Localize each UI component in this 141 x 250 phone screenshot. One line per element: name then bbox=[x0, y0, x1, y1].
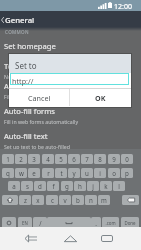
staticText: .com bbox=[105, 220, 116, 226]
button[interactable]: r bbox=[42, 168, 54, 178]
button[interactable]: / bbox=[33, 217, 47, 229]
button[interactable]: 0 bbox=[121, 154, 133, 164]
staticText: Cancel bbox=[28, 93, 51, 103]
staticText: b bbox=[76, 196, 80, 204]
button[interactable]: 1 bbox=[2, 154, 14, 164]
staticText: Auto-fill text bbox=[4, 131, 48, 141]
button[interactable]: j bbox=[87, 181, 99, 191]
button[interactable]: b bbox=[72, 195, 84, 205]
staticText: Normal bbox=[4, 73, 23, 80]
staticText: 4 bbox=[46, 155, 50, 163]
staticText: p bbox=[125, 169, 129, 177]
button[interactable]: Auto-fill text bbox=[0, 131, 141, 150]
button[interactable]: 8 bbox=[94, 154, 106, 164]
button[interactable]: u bbox=[81, 168, 93, 178]
button[interactable]: q bbox=[2, 168, 14, 178]
staticText: General bbox=[5, 15, 35, 26]
staticText: s bbox=[26, 182, 29, 190]
staticText: m bbox=[101, 196, 107, 204]
button[interactable]: p bbox=[121, 168, 133, 178]
staticText: h bbox=[78, 182, 82, 190]
button[interactable]: Cancel bbox=[9, 89, 69, 106]
button[interactable]: 3 bbox=[28, 154, 40, 164]
button[interactable]: 4 bbox=[42, 154, 54, 164]
staticText: 6 bbox=[72, 155, 76, 163]
button[interactable]: w bbox=[15, 168, 27, 178]
staticText: . bbox=[95, 219, 97, 227]
staticText: 7 bbox=[85, 155, 89, 163]
staticText: Set homepage bbox=[4, 41, 56, 51]
staticText: http:// bbox=[12, 76, 34, 86]
button[interactable]: Auto-fill forms bbox=[0, 106, 141, 125]
button[interactable]: . bbox=[91, 217, 101, 229]
button[interactable]: 2 bbox=[15, 154, 27, 164]
staticText: OK bbox=[95, 93, 106, 103]
staticText: Auto-fill forms bbox=[4, 106, 55, 116]
staticText: u bbox=[85, 169, 89, 177]
button[interactable]: OK bbox=[70, 89, 131, 106]
button[interactable]: 9 bbox=[108, 154, 120, 164]
button[interactable] bbox=[122, 195, 139, 205]
button[interactable]: v bbox=[59, 195, 71, 205]
staticText: Fill in web forms automatically bbox=[4, 93, 79, 100]
button[interactable]: 7 bbox=[81, 154, 93, 164]
button[interactable]: k bbox=[100, 181, 112, 191]
staticText: Set to bbox=[15, 60, 37, 71]
staticText: EN bbox=[22, 220, 28, 226]
staticText: e bbox=[32, 169, 36, 177]
button[interactable]: General bbox=[0, 11, 141, 28]
staticText: 12:00 bbox=[114, 2, 132, 12]
staticText: Text size bbox=[4, 61, 35, 71]
button[interactable]: a bbox=[8, 181, 20, 191]
button[interactable]: EN bbox=[18, 217, 32, 229]
staticText: z bbox=[24, 196, 27, 204]
staticText: 8 bbox=[98, 155, 102, 163]
staticText: Set up text to be auto-filled bbox=[4, 143, 70, 150]
staticText: 3 bbox=[32, 155, 36, 163]
button[interactable]: Text size bbox=[0, 61, 141, 80]
button[interactable] bbox=[2, 195, 18, 205]
button[interactable]: i bbox=[94, 168, 106, 178]
button[interactable]: e bbox=[28, 168, 40, 178]
button[interactable] bbox=[47, 217, 91, 229]
staticText: d bbox=[38, 182, 42, 190]
button[interactable]: Home bbox=[51, 227, 89, 250]
staticText: 0 bbox=[125, 155, 129, 163]
button[interactable]: f bbox=[47, 181, 59, 191]
button[interactable]: c bbox=[46, 195, 58, 205]
button[interactable]: y bbox=[68, 168, 80, 178]
staticText: r bbox=[47, 169, 50, 177]
button[interactable]: .com bbox=[102, 217, 119, 229]
button[interactable]: x bbox=[32, 195, 44, 205]
staticText: Fill in web forms automatically bbox=[4, 118, 79, 125]
button[interactable]: Recent apps bbox=[88, 227, 126, 250]
staticText: v bbox=[63, 196, 67, 204]
staticText: j bbox=[92, 182, 94, 190]
staticText: f bbox=[52, 182, 55, 190]
staticText: c bbox=[51, 196, 54, 204]
button[interactable]: h bbox=[74, 181, 86, 191]
button[interactable]: g bbox=[61, 181, 73, 191]
button[interactable]: d bbox=[34, 181, 46, 191]
button[interactable]: Auto-fill forms bbox=[0, 81, 141, 100]
button[interactable]: 6 bbox=[68, 154, 80, 164]
button[interactable]: l bbox=[113, 181, 125, 191]
staticText: q bbox=[6, 169, 10, 177]
staticText: y bbox=[72, 169, 76, 177]
button[interactable]: Back bbox=[12, 227, 50, 250]
staticText: n bbox=[89, 196, 93, 204]
button[interactable]: m bbox=[98, 195, 110, 205]
button[interactable]: z bbox=[19, 195, 31, 205]
staticText: 9 bbox=[112, 155, 116, 163]
button[interactable]: Set homepage bbox=[0, 41, 141, 51]
staticText: i bbox=[99, 169, 101, 177]
button[interactable]: 5 bbox=[55, 154, 67, 164]
staticText: t bbox=[60, 169, 63, 177]
button[interactable]: s bbox=[21, 181, 33, 191]
button[interactable]: o bbox=[108, 168, 120, 178]
button[interactable] bbox=[2, 217, 16, 229]
button[interactable]: n bbox=[85, 195, 97, 205]
staticText: 2 bbox=[19, 155, 23, 163]
button[interactable]: Done bbox=[121, 217, 139, 229]
button[interactable]: t bbox=[55, 168, 67, 178]
